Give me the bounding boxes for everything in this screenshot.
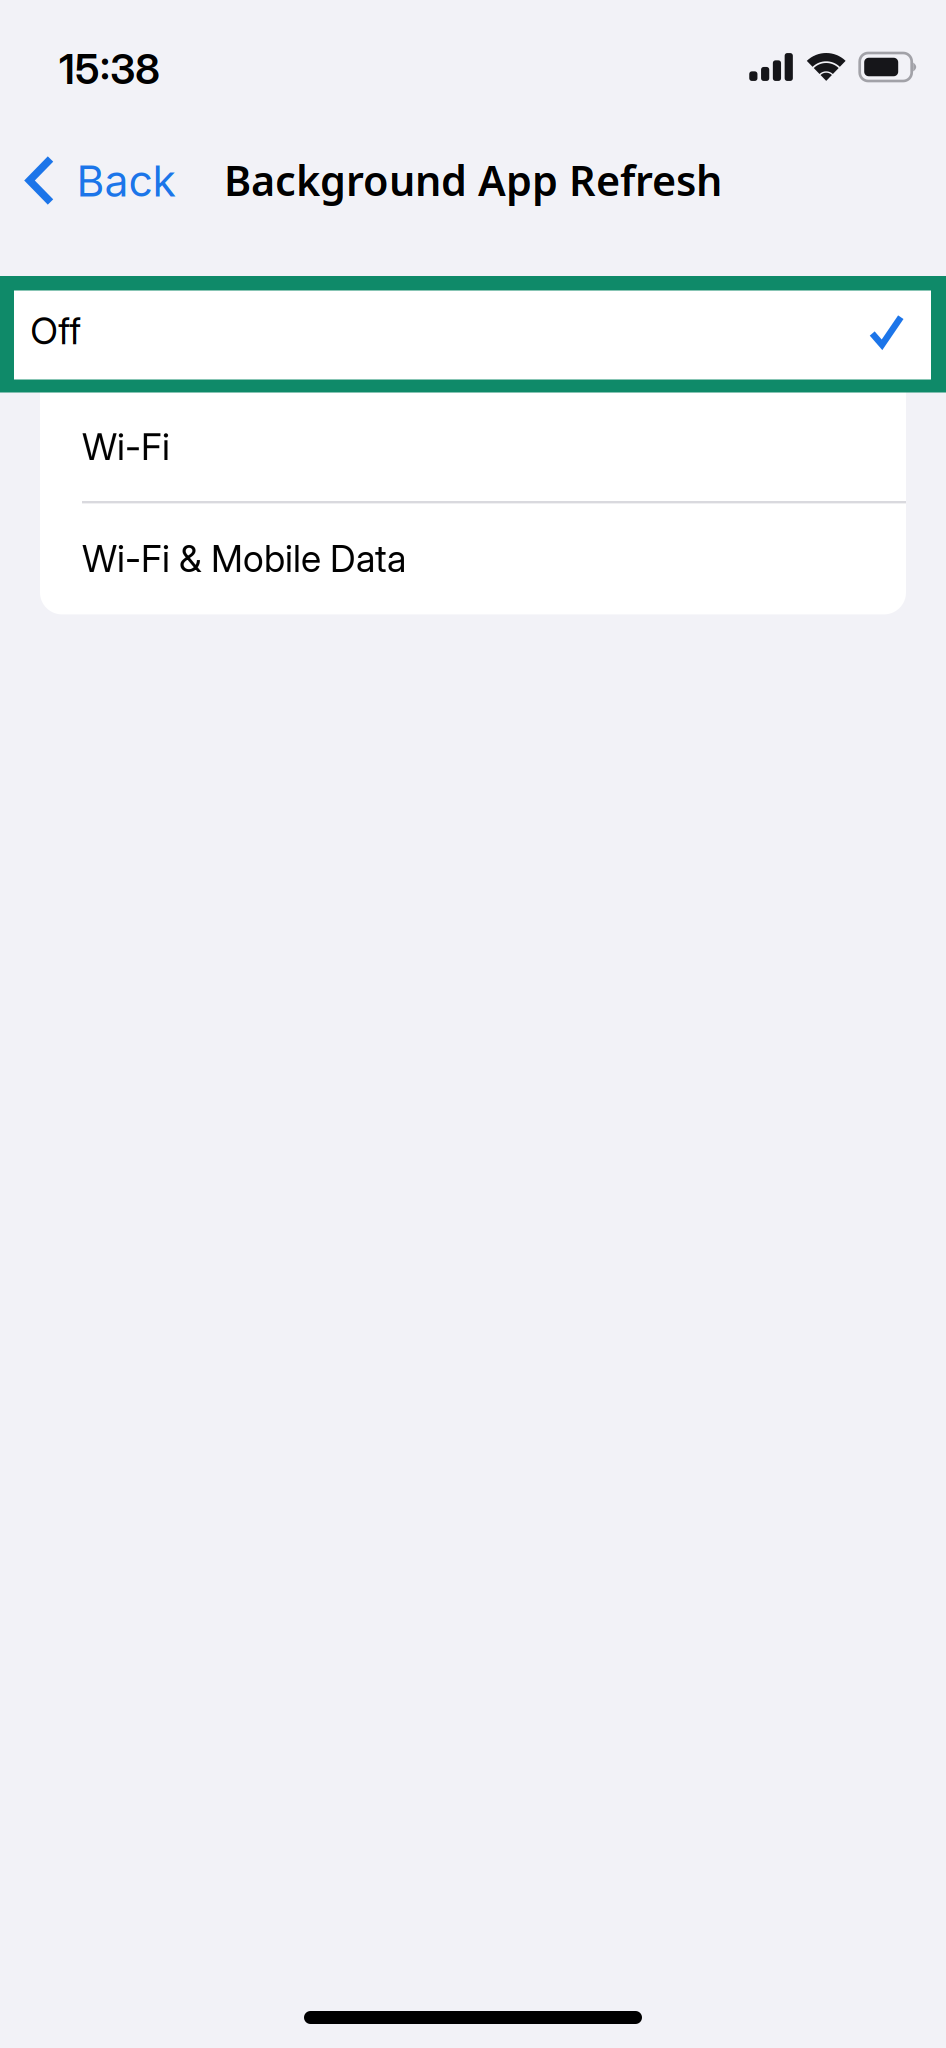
- button[interactable]: Wi-Fi & Mobile Data: [40, 503, 906, 614]
- staticText: Back: [76, 155, 175, 207]
- staticText: Background App Refresh: [224, 152, 722, 208]
- staticText: Wi-Fi: [82, 425, 170, 469]
- staticText: Off: [30, 309, 81, 353]
- staticText: Wi-Fi & Mobile Data: [82, 536, 406, 581]
- staticText: 15:38: [59, 44, 160, 94]
- button[interactable]: Back: [0, 132, 195, 228]
- button[interactable]: Wi-Fi: [40, 391, 906, 501]
- button[interactable]: Off: [0, 276, 946, 392]
